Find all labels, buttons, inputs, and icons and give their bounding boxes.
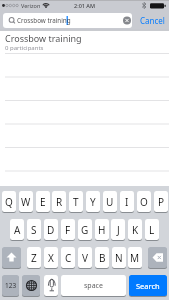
button[interactable] — [2, 247, 21, 268]
staticText: B — [99, 251, 106, 265]
button[interactable]: A — [10, 219, 24, 240]
button[interactable] — [44, 275, 58, 296]
staticText: Z — [31, 251, 37, 265]
staticText: P — [158, 195, 165, 209]
button[interactable]: T — [69, 191, 83, 212]
button[interactable]: Search — [129, 275, 167, 296]
staticText: E — [40, 195, 46, 209]
staticText: C — [65, 251, 72, 265]
staticText: S — [31, 223, 37, 237]
button[interactable]: Q — [2, 191, 16, 212]
button[interactable]: N — [112, 247, 126, 268]
button[interactable]: C — [61, 247, 75, 268]
staticText: Y — [90, 195, 96, 209]
button[interactable]: H — [95, 219, 109, 240]
button[interactable]: S — [27, 219, 41, 240]
staticText: L — [149, 223, 155, 237]
button[interactable]: O — [137, 191, 151, 212]
button[interactable]: R — [52, 191, 66, 212]
staticText: 123 — [5, 281, 17, 290]
staticText: R — [56, 195, 63, 209]
button[interactable]: Crossbow training — [3, 13, 132, 28]
button[interactable]: G — [78, 219, 92, 240]
button[interactable]: Z — [27, 247, 41, 268]
button[interactable]: F — [61, 219, 75, 240]
button[interactable]: M — [128, 247, 142, 268]
staticText: H — [98, 223, 106, 237]
button[interactable]: E — [36, 191, 50, 212]
staticText: M — [130, 251, 140, 265]
button[interactable]: Y — [86, 191, 100, 212]
staticText: Search — [136, 281, 160, 291]
button[interactable]: X — [44, 247, 58, 268]
staticText: O — [140, 195, 148, 209]
button[interactable]: I — [120, 191, 134, 212]
staticText: space — [84, 281, 103, 291]
staticText: X — [48, 251, 54, 265]
button[interactable]: J — [111, 219, 125, 240]
button[interactable]: D — [44, 219, 58, 240]
button[interactable]: U — [103, 191, 117, 212]
staticText: K — [132, 223, 139, 237]
staticText: G — [81, 223, 89, 237]
button[interactable]: V — [78, 247, 92, 268]
staticText: Crossbow training — [5, 32, 82, 44]
staticText: D — [47, 223, 55, 237]
button[interactable]: Cancel — [136, 11, 169, 30]
staticText: Verizon — [21, 2, 41, 9]
button[interactable] — [148, 247, 167, 268]
button[interactable]: B — [95, 247, 109, 268]
button[interactable]: W — [19, 191, 33, 212]
button[interactable]: 123 — [2, 275, 19, 296]
staticText: F — [65, 223, 71, 237]
staticText: U — [106, 195, 114, 209]
staticText: J — [117, 223, 120, 237]
staticText: Crossbow training — [17, 16, 71, 25]
staticText: T — [73, 195, 79, 209]
staticText: I — [125, 195, 129, 209]
staticText: A — [14, 223, 21, 237]
staticText: V — [82, 251, 88, 265]
button[interactable]: K — [128, 219, 142, 240]
button[interactable]: L — [145, 219, 159, 240]
staticText: Q — [5, 195, 13, 209]
staticText: 0 participants — [5, 44, 44, 52]
button[interactable] — [22, 275, 40, 296]
staticText: N — [115, 251, 123, 265]
button[interactable]: Crossbow training — [0, 30, 169, 53]
button[interactable]: P — [154, 191, 168, 212]
staticText: W — [21, 195, 31, 209]
button[interactable]: space — [61, 275, 126, 296]
staticText: 2:01 AM — [74, 2, 96, 9]
staticText: Cancel — [140, 15, 165, 26]
